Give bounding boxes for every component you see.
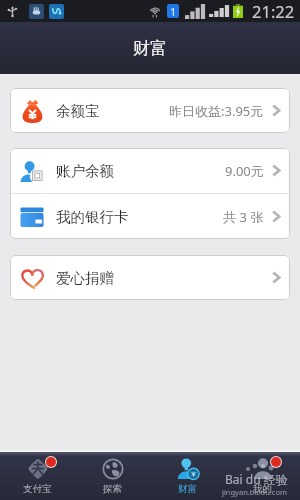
staticText: 爱心捐赠 [56,269,114,287]
button[interactable]: 爱心捐赠 [10,255,290,300]
button[interactable]: 我的银行卡 [10,194,290,239]
staticText: 支付宝 [23,483,52,495]
button[interactable]: 探索 [75,452,150,500]
staticText: 我的 [253,483,272,495]
staticText: 共 3 张 [223,208,264,226]
button[interactable]: 财富 [150,452,225,500]
staticText: 21:22 [252,0,295,22]
button[interactable]: 账户余额 [10,148,290,193]
staticText: 探索 [103,483,122,495]
staticText: 昨日收益:3.95元 [169,102,264,120]
staticText: 账户余额 [56,162,114,180]
staticText: 我的银行卡 [56,208,129,226]
staticText: Bai du 经验 [225,471,288,487]
staticText: 余额宝 [56,102,100,120]
staticText: jingyan.baidu.com [222,487,287,497]
button[interactable]: 余额宝 [10,88,290,133]
staticText: 财富 [178,483,197,495]
button[interactable]: 我的 [225,452,300,500]
button[interactable]: 支付宝 [0,452,75,500]
staticText: 1 [170,4,177,18]
staticText: 财富 [133,38,167,59]
staticText: 9.00元 [225,162,264,180]
